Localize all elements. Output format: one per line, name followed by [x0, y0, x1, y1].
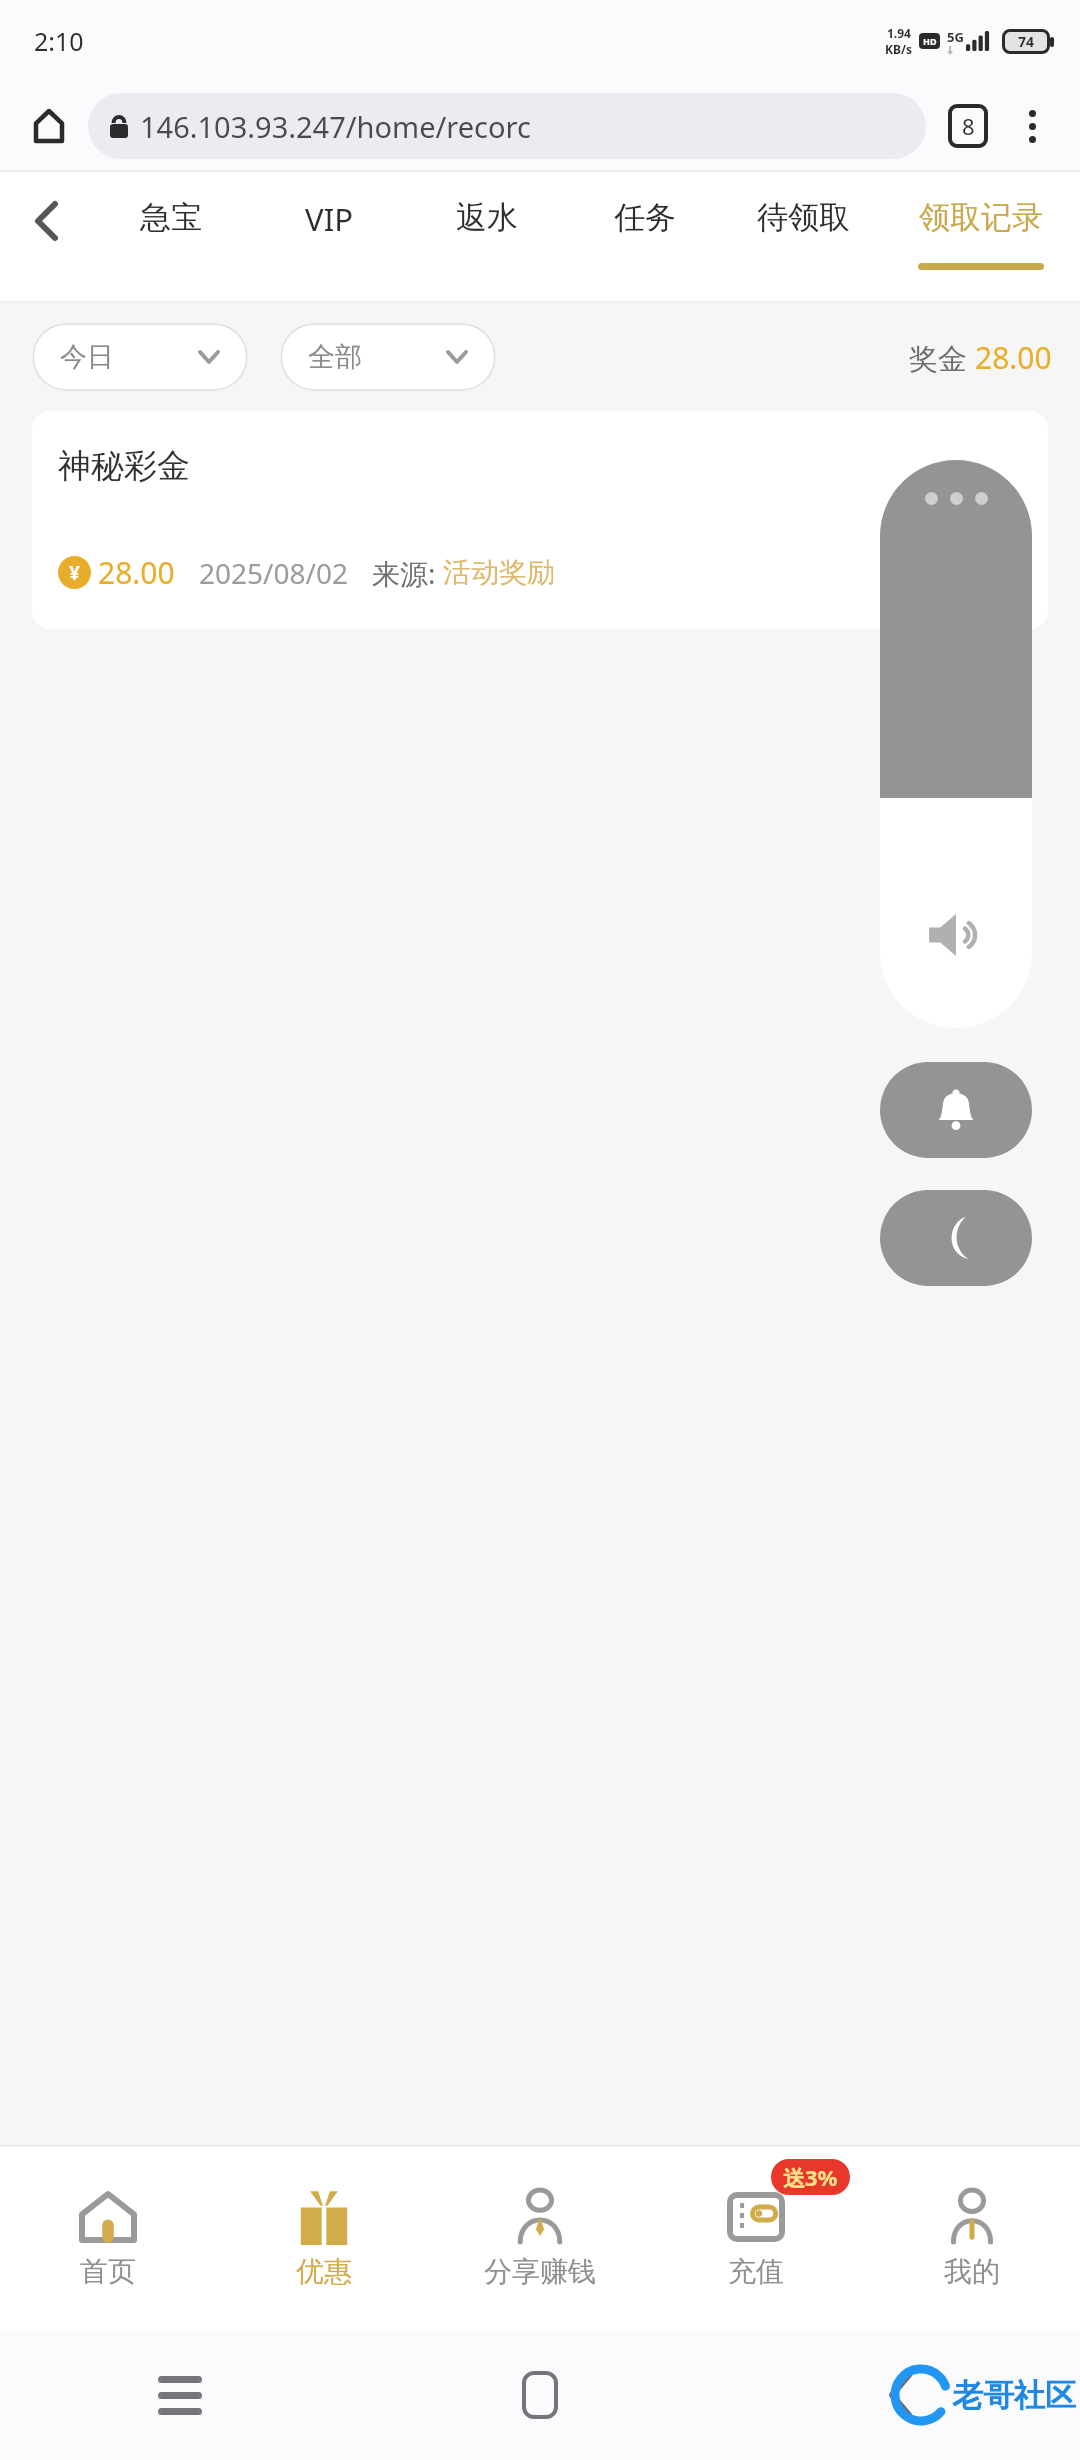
staticText: ¥ [69, 560, 80, 586]
button[interactable]: More options [1004, 98, 1060, 154]
staticText: 28.00 [975, 337, 1052, 378]
button[interactable]: 我的 [864, 2145, 1080, 2330]
button[interactable]: Ring mode [880, 1062, 1032, 1158]
staticText: 老哥社区 [952, 2376, 1076, 2415]
button[interactable]: 急宝 [92, 170, 250, 303]
button[interactable]: Tabs [940, 98, 996, 154]
staticText: 神秘彩金 [58, 445, 190, 487]
staticText: 首页 [80, 2254, 136, 2289]
staticText: 充值 [728, 2254, 784, 2289]
staticText: 2025/08/02 [199, 554, 348, 592]
button[interactable]: 首页 [0, 2145, 216, 2330]
staticText: 急宝 [140, 198, 202, 237]
staticText: 分享赚钱 [484, 2254, 596, 2289]
button[interactable]: 充值 [648, 2145, 864, 2330]
button[interactable]: Volume [880, 460, 1032, 1028]
staticText: 活动奖励 [443, 555, 555, 590]
staticText: 来源: [372, 554, 443, 592]
button[interactable]: 神秘彩金 [32, 411, 1048, 629]
button[interactable]: Home [20, 97, 78, 155]
button[interactable]: 领取记录 [882, 170, 1080, 303]
staticText: 5G [947, 28, 964, 46]
staticText: 我的 [944, 2254, 1000, 2289]
button[interactable]: 任务 [566, 170, 724, 303]
staticText: 今日 [60, 340, 114, 374]
staticText: 优惠 [296, 2254, 352, 2289]
staticText: 1.94 [887, 25, 911, 41]
button[interactable]: 全部 [280, 323, 496, 391]
staticText: 全部 [308, 340, 362, 374]
button[interactable]: 今日 [32, 323, 248, 391]
button[interactable]: 146.103.93.247/home/recorc [88, 93, 926, 159]
button[interactable]: 优惠 [216, 2145, 432, 2330]
staticText: 8 [962, 111, 975, 141]
button[interactable]: VIP [250, 170, 408, 303]
staticText: 28.00 [98, 552, 175, 593]
button[interactable]: 返水 [408, 170, 566, 303]
staticText: 74 [1018, 32, 1035, 51]
button[interactable]: 待领取 [724, 170, 882, 303]
button[interactable]: Home [360, 2330, 720, 2460]
button[interactable]: Do not disturb [880, 1190, 1032, 1286]
staticText: 2:10 [34, 24, 84, 58]
staticText: VIP [305, 198, 353, 240]
button[interactable]: 分享赚钱 [432, 2145, 648, 2330]
staticText: 领取记录 [919, 198, 1043, 237]
staticText: 待领取 [757, 198, 850, 237]
staticText: 146.103.93.247/home/recorc [140, 107, 531, 146]
button[interactable]: Back [0, 170, 92, 303]
button[interactable]: Back [720, 2330, 1080, 2460]
staticText: 返水 [456, 198, 518, 237]
staticText: 任务 [614, 198, 676, 237]
staticText: KB/s [885, 41, 912, 57]
staticText: 奖金 [909, 338, 975, 378]
staticText: HD [923, 35, 937, 47]
staticText: 送3% [783, 2162, 838, 2192]
button[interactable]: Recents [0, 2330, 360, 2460]
